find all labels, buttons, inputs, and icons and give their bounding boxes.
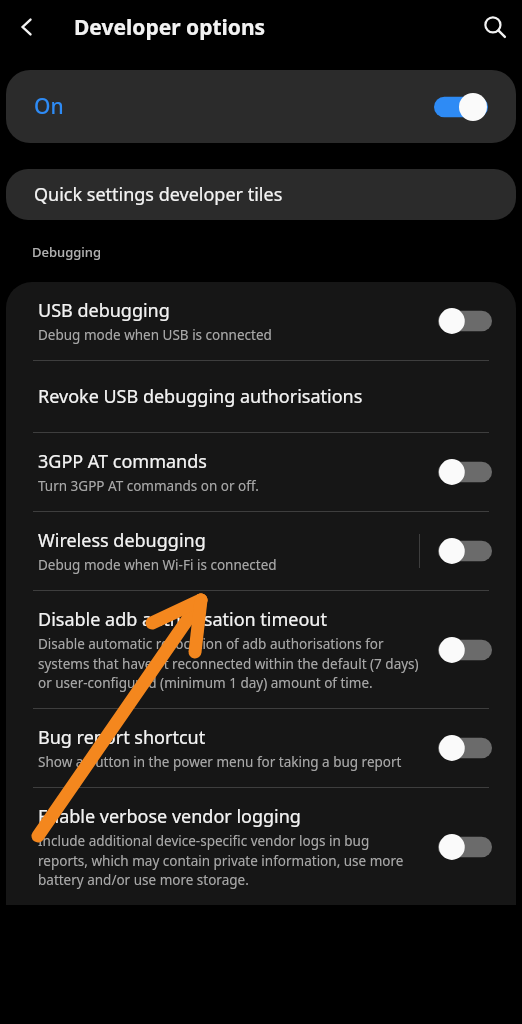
button[interactable]: Wireless debugging <box>434 533 496 569</box>
button[interactable]: Back <box>0 0 54 54</box>
button[interactable]: Developer options on <box>434 93 488 121</box>
staticText: Include additional device-specific vendo… <box>38 832 422 889</box>
button[interactable]: Search <box>468 0 522 54</box>
button[interactable]: Disable adb authorisation timeout <box>6 591 516 708</box>
staticText: Turn 3GPP AT commands on or off. <box>38 477 259 495</box>
staticText: On <box>34 92 64 121</box>
button[interactable]: Quick settings developer tiles <box>6 169 516 220</box>
button[interactable]: Wireless debugging <box>6 512 516 590</box>
button[interactable]: 3GPP AT commands <box>434 454 496 490</box>
button[interactable]: USB debugging <box>434 303 496 339</box>
button[interactable]: 3GPP AT commands <box>6 433 516 511</box>
button[interactable]: Revoke USB debugging authorisations <box>6 361 516 432</box>
button[interactable]: Enable verbose vendor logging <box>434 829 496 865</box>
button[interactable]: Enable verbose vendor logging <box>6 788 516 905</box>
button[interactable]: USB debugging <box>6 282 516 360</box>
button[interactable]: On <box>6 70 516 143</box>
staticText: Debugging <box>32 243 102 261</box>
button[interactable]: Disable adb authorisation timeout <box>434 632 496 668</box>
button[interactable]: Bug report shortcut <box>6 709 516 787</box>
staticText: Enable verbose vendor logging <box>38 804 301 829</box>
staticText: Wireless debugging <box>38 528 206 553</box>
staticText: Disable automatic revocation of adb auth… <box>38 635 422 692</box>
staticText: Bug report shortcut <box>38 725 206 750</box>
staticText: Disable adb authorisation timeout <box>38 607 327 632</box>
staticText: USB debugging <box>38 298 170 323</box>
staticText: Quick settings developer tiles <box>34 182 283 207</box>
button[interactable]: Bug report shortcut <box>434 730 496 766</box>
staticText: 3GPP AT commands <box>38 449 207 474</box>
staticText: Show a button in the power menu for taki… <box>38 753 402 771</box>
staticText: Debug mode when USB is connected <box>38 326 272 344</box>
staticText: Revoke USB debugging authorisations <box>38 384 363 409</box>
staticText: Developer options <box>74 13 266 42</box>
staticText: Debug mode when Wi-Fi is connected <box>38 556 277 574</box>
